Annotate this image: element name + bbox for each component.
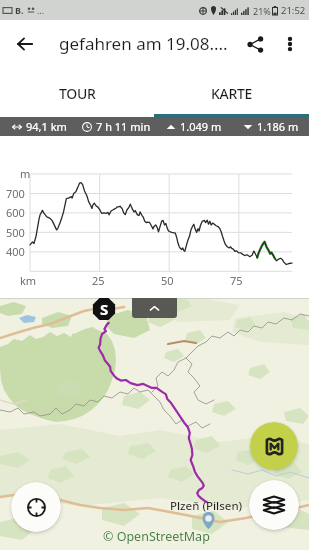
staticText: 25 <box>92 273 105 288</box>
staticText: m <box>20 166 31 181</box>
button[interactable]: Collapse elevation profile <box>132 298 177 318</box>
staticText: 7 h 11 min <box>96 119 151 134</box>
staticText: gefahren am 19.08.... <box>59 32 228 55</box>
staticText: 21% <box>253 5 271 17</box>
staticText: TOUR <box>59 84 96 103</box>
button[interactable]: KARTE <box>154 66 309 117</box>
button[interactable]: More options <box>275 26 309 60</box>
staticText: 94,1 km <box>26 119 67 134</box>
button[interactable]: Map legend <box>250 422 298 470</box>
staticText: S <box>100 299 109 319</box>
staticText: … <box>37 4 45 16</box>
button[interactable]: TOUR <box>0 66 154 117</box>
staticText: 700 <box>6 186 25 201</box>
staticText: 500 <box>6 225 25 240</box>
staticText: Plzeň (Pilsen) <box>170 498 243 514</box>
staticText: 1.186 m <box>257 119 299 134</box>
staticText: 21:52 <box>281 4 306 17</box>
staticText: KARTE <box>211 84 253 103</box>
staticText: 50 <box>161 273 174 288</box>
staticText: 1.049 m <box>180 119 222 134</box>
staticText: © OpenStreetMap <box>103 528 210 545</box>
staticText: B. <box>15 4 24 16</box>
staticText: 75 <box>230 273 243 288</box>
staticText: km <box>20 273 37 288</box>
button[interactable]: My location <box>11 482 61 532</box>
staticText: 600 <box>6 205 25 220</box>
staticText: 400 <box>6 244 25 259</box>
button[interactable]: Back <box>0 20 46 66</box>
button[interactable]: Share <box>235 23 275 63</box>
button[interactable]: Map layers <box>249 480 299 530</box>
